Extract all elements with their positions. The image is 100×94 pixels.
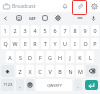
button[interactable]: J [66, 51, 74, 63]
button[interactable]: H [56, 51, 64, 63]
button[interactable]: Enter [85, 80, 98, 90]
button[interactable]: Y [51, 38, 59, 49]
staticText: V [48, 68, 52, 75]
staticText: W [12, 40, 18, 47]
staticText: 8 [73, 27, 77, 34]
staticText: A [8, 54, 12, 61]
staticText: O [83, 40, 88, 47]
button[interactable]: X [26, 65, 34, 77]
staticText: E [24, 40, 27, 47]
button[interactable]: O [81, 38, 89, 49]
button[interactable]: Broadcast [1, 1, 36, 11]
staticText: X [28, 68, 32, 75]
button[interactable]: Keyboard settings [53, 13, 63, 23]
button[interactable]: B [56, 65, 64, 77]
button[interactable]: Back [0, 13, 10, 23]
button[interactable]: , [16, 79, 24, 91]
button[interactable]: P [91, 38, 99, 49]
staticText: G [48, 54, 52, 61]
staticText: T [44, 40, 47, 47]
button[interactable]: M [76, 65, 84, 77]
button[interactable]: S [16, 51, 24, 63]
button[interactable]: Attach [75, 1, 85, 11]
staticText: R [33, 40, 37, 47]
button[interactable]: N [66, 65, 74, 77]
button[interactable]: Hide keyboard [75, 13, 85, 23]
button[interactable]: G [46, 51, 54, 63]
button[interactable]: ?123 [1, 79, 14, 91]
staticText: C [38, 68, 42, 75]
staticText: J [69, 54, 71, 61]
staticText: . [77, 82, 79, 89]
button[interactable]: Shift [1, 65, 14, 77]
button[interactable]: Notifications [60, 1, 70, 11]
button[interactable]: F [36, 51, 44, 63]
staticText: 7 [63, 27, 67, 34]
button[interactable]: I [71, 38, 79, 49]
button[interactable]: 8 [71, 25, 79, 36]
staticText: Broadcast [12, 3, 36, 10]
staticText: 1 [3, 27, 7, 34]
staticText: H [58, 54, 62, 61]
staticText: 9 [83, 27, 87, 34]
button[interactable]: 5 [41, 25, 49, 36]
staticText: U [63, 40, 67, 47]
staticText: Q [3, 40, 8, 47]
staticText: S [19, 54, 22, 61]
button[interactable]: 4 [31, 25, 39, 36]
staticText: ?123 [3, 82, 13, 88]
staticText: 5 [43, 27, 47, 34]
button[interactable]: Z [16, 65, 24, 77]
staticText: N [68, 68, 73, 75]
button[interactable]: GIF [27, 13, 37, 23]
button[interactable]: Voice input [88, 13, 98, 23]
staticText: K [78, 54, 82, 61]
button[interactable]: T [41, 38, 49, 49]
button[interactable]: 2 [11, 25, 19, 36]
button[interactable]: D [26, 51, 34, 63]
staticText: F [39, 54, 42, 61]
staticText: 0 [93, 27, 97, 34]
staticText: D [28, 54, 32, 61]
staticText: 4 [33, 27, 37, 34]
staticText: L [89, 54, 92, 61]
button[interactable]: 7 [61, 25, 69, 36]
staticText: GIF [29, 16, 36, 21]
button[interactable]: 1 [1, 25, 9, 36]
button[interactable]: V [46, 65, 54, 77]
button[interactable]: A [6, 51, 14, 63]
button[interactable]: 6 [51, 25, 59, 36]
button[interactable]: Clipboard [40, 13, 50, 23]
staticText: 2 [13, 27, 17, 34]
button[interactable]: 3 [21, 25, 29, 36]
button[interactable]: Backspace [86, 65, 98, 77]
staticText: Y [53, 40, 57, 47]
button[interactable]: L [86, 51, 94, 63]
staticText: M [78, 68, 83, 75]
button[interactable]: . [74, 79, 82, 91]
button[interactable]: 9 [81, 25, 89, 36]
staticText: P [93, 40, 97, 47]
button[interactable]: Q [1, 38, 9, 49]
button[interactable]: K [76, 51, 84, 63]
staticText: B [58, 68, 62, 75]
staticText: Z [18, 68, 22, 75]
button[interactable]: E [21, 38, 29, 49]
staticText: 6 [53, 27, 57, 34]
button[interactable]: Emoji [26, 79, 34, 91]
button[interactable]: W [11, 38, 19, 49]
staticText: , [19, 82, 21, 89]
staticText: QWERTY [47, 83, 62, 88]
button[interactable]: Stickers [14, 13, 24, 23]
button[interactable]: QWERTY [36, 79, 72, 91]
button[interactable]: C [36, 65, 44, 77]
staticText: I [74, 40, 76, 47]
button[interactable]: R [31, 38, 39, 49]
button[interactable]: Settings [89, 1, 99, 11]
button[interactable]: 0 [91, 25, 99, 36]
staticText: 3 [23, 27, 27, 34]
button[interactable]: U [61, 38, 69, 49]
